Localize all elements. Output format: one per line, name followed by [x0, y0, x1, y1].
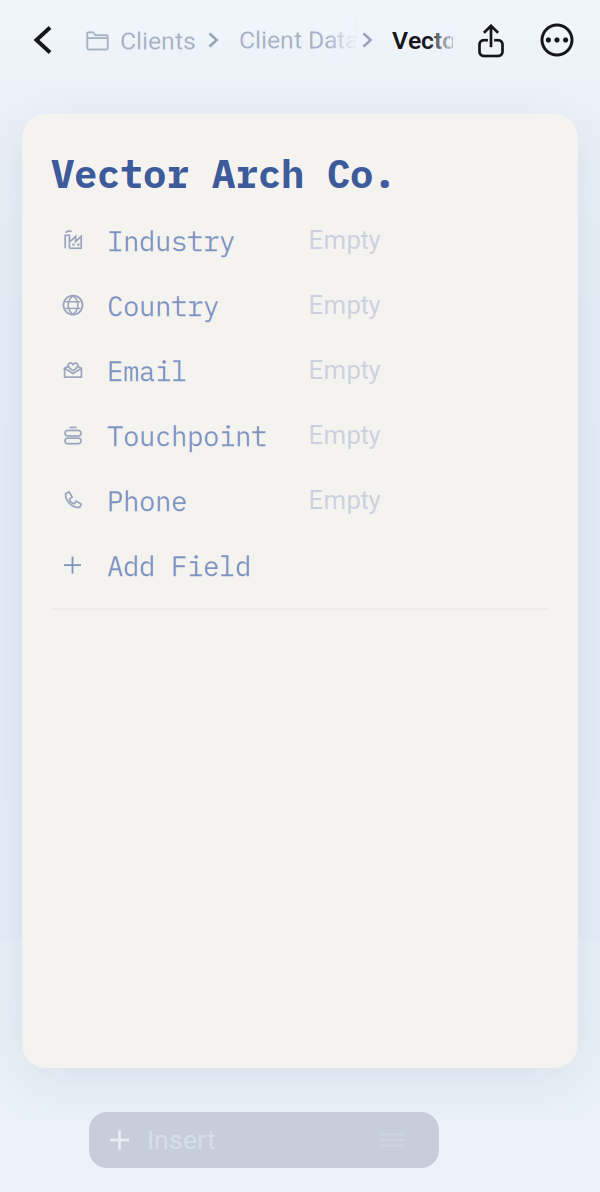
button[interactable]: Clients [86, 19, 196, 63]
staticText: Empty [308, 485, 380, 515]
staticText: Client Data [239, 25, 358, 55]
staticText: Empty [308, 290, 380, 320]
staticText: Touchpoint [107, 418, 267, 454]
button[interactable]: Client Data [239, 18, 358, 62]
button[interactable]: Email [22, 338, 578, 403]
button[interactable]: Phone [22, 468, 578, 533]
button[interactable]: Back [21, 18, 65, 62]
button[interactable]: Industry [22, 208, 578, 273]
staticText: Empty [308, 420, 380, 450]
staticText: Clients [120, 26, 196, 56]
staticText: Vector Arch Co. [51, 148, 396, 199]
staticText: Vector Arch Co. [392, 26, 567, 55]
staticText: Add Field [107, 548, 251, 584]
button[interactable]: Share [469, 19, 513, 63]
staticText: Country [107, 288, 219, 324]
button[interactable]: Touchpoint [22, 403, 578, 468]
staticText: Phone [107, 483, 187, 519]
staticText: Insert [147, 1124, 216, 1156]
staticText: Industry [107, 223, 235, 259]
staticText: Empty [308, 355, 380, 385]
button[interactable]: More options [535, 18, 579, 62]
button[interactable]: Add Field [22, 533, 578, 598]
staticText: Empty [308, 225, 380, 255]
button[interactable]: Country [22, 273, 578, 338]
button[interactable]: Insert [89, 1112, 439, 1168]
staticText: Email [107, 353, 187, 389]
